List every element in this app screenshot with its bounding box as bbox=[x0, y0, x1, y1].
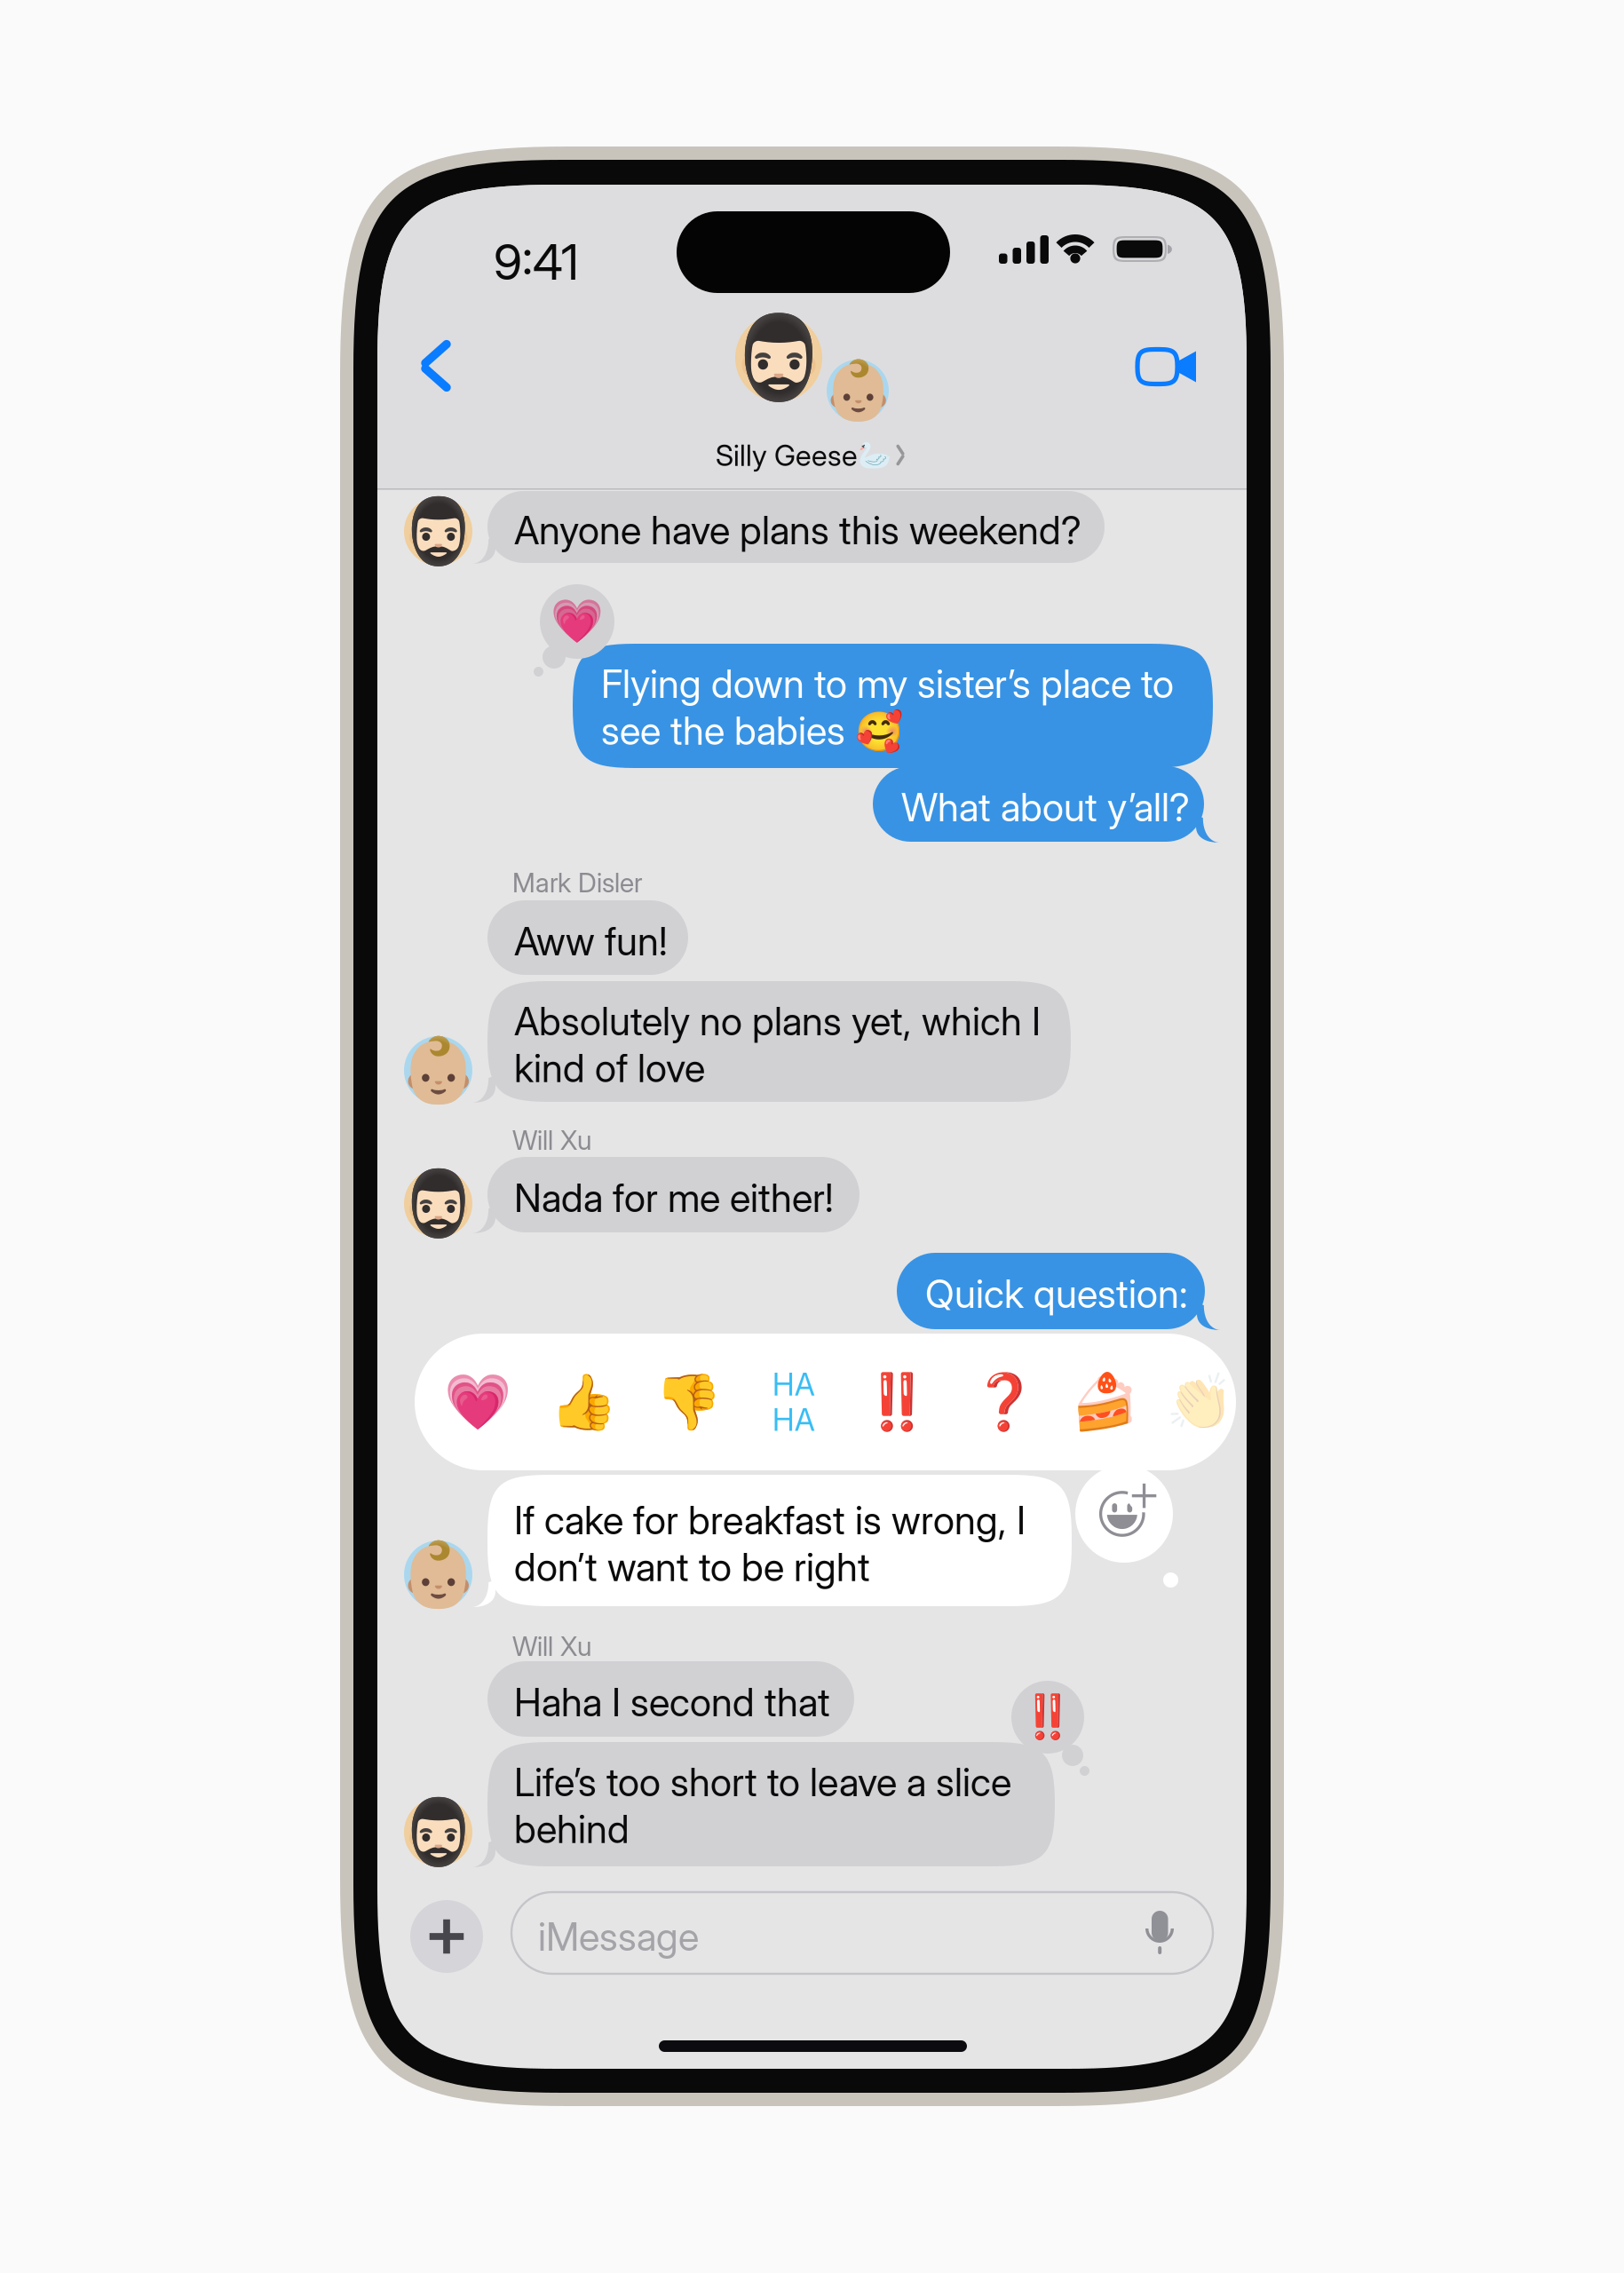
staticText: HA bbox=[772, 1366, 815, 1403]
staticText: Aww fun! bbox=[514, 918, 668, 965]
staticText: 🧔🏻‍♂️ bbox=[399, 1166, 478, 1241]
staticText: 👶🏼 bbox=[399, 1033, 478, 1108]
staticText: Absolutely no plans yet, which I kind of… bbox=[514, 998, 1041, 1091]
staticText: Mark Disler bbox=[512, 867, 643, 895]
staticText: Silly Geese bbox=[716, 438, 858, 473]
staticText: HA bbox=[772, 1401, 815, 1438]
staticText: What about y’all? bbox=[901, 784, 1190, 831]
staticText: 🧔🏻‍♂️ bbox=[728, 310, 829, 405]
button[interactable]: Add attachment bbox=[410, 1900, 483, 1973]
staticText: Life’s too short to leave a slice behind bbox=[514, 1759, 1011, 1852]
staticText: 👶🏼 bbox=[399, 1537, 478, 1612]
staticText: 👶🏼 bbox=[822, 357, 894, 425]
staticText: Quick question: bbox=[925, 1271, 1188, 1317]
staticText: 👍 bbox=[550, 1370, 617, 1434]
button[interactable]: FaceTime bbox=[1121, 340, 1212, 393]
staticText: Flying down to my sister’s place to see … bbox=[601, 661, 1174, 754]
staticText: 🧔🏻‍♂️ bbox=[399, 494, 478, 569]
staticText: 9:41 bbox=[494, 233, 579, 270]
staticText: Nada for me either! bbox=[514, 1175, 834, 1221]
button[interactable]: Back bbox=[400, 334, 471, 398]
staticText: 💗 bbox=[551, 597, 604, 646]
staticText: Will Xu bbox=[512, 1630, 591, 1659]
staticText: 👎 bbox=[654, 1370, 722, 1434]
staticText: Haha I second that bbox=[514, 1679, 830, 1726]
staticText: 👏 bbox=[1166, 1370, 1233, 1434]
button[interactable]: iMessage bbox=[511, 1892, 1213, 1974]
staticText: ‼️ bbox=[863, 1370, 931, 1434]
staticText: 💗 bbox=[444, 1370, 511, 1434]
staticText: ‼️ bbox=[1021, 1692, 1074, 1742]
staticText: Anyone have plans this weekend? bbox=[514, 507, 1081, 554]
staticText: iMessage bbox=[538, 1913, 699, 1954]
staticText: 🍰 bbox=[1071, 1370, 1138, 1434]
staticText: 🧔🏻‍♂️ bbox=[399, 1795, 478, 1870]
staticText: ❓ bbox=[970, 1370, 1038, 1434]
staticText: If cake for breakfast is wrong, I don’t … bbox=[514, 1497, 1026, 1590]
staticText: Will Xu bbox=[512, 1124, 591, 1152]
button[interactable]: 🧔🏻‍♂️ bbox=[706, 314, 919, 474]
staticText: 🦢 bbox=[858, 440, 883, 466]
